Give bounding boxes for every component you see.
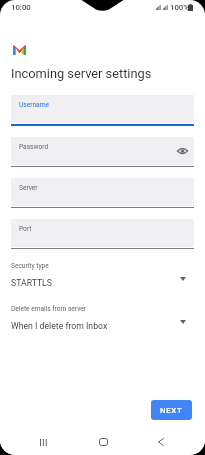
button[interactable]: Recent apps (29, 429, 59, 455)
staticText: Server (19, 184, 38, 192)
button[interactable]: Back (146, 429, 176, 455)
button[interactable]: Home (88, 429, 118, 455)
button[interactable]: Show password (175, 144, 189, 158)
staticText: When I delete from Inbox (11, 321, 108, 331)
staticText: Delete emails from server (11, 305, 87, 313)
staticText: Security type (11, 262, 49, 270)
staticText: Port (19, 225, 32, 233)
staticText: Password (19, 143, 49, 151)
staticText: STARTTLS (11, 278, 52, 288)
button[interactable]: NEXT (151, 400, 192, 420)
button[interactable]: Username (11, 95, 194, 126)
button[interactable]: Server (11, 178, 194, 208)
button[interactable]: Security type (11, 262, 194, 290)
staticText: NEXT (160, 406, 183, 415)
staticText: 10:00 (11, 3, 31, 12)
button[interactable]: Port (11, 219, 194, 249)
staticText: Incoming server settings (11, 66, 152, 81)
button[interactable]: Password (11, 137, 194, 167)
staticText: Username (19, 101, 49, 109)
staticText: 100% (170, 3, 190, 12)
button[interactable]: Delete emails from server (11, 305, 194, 333)
